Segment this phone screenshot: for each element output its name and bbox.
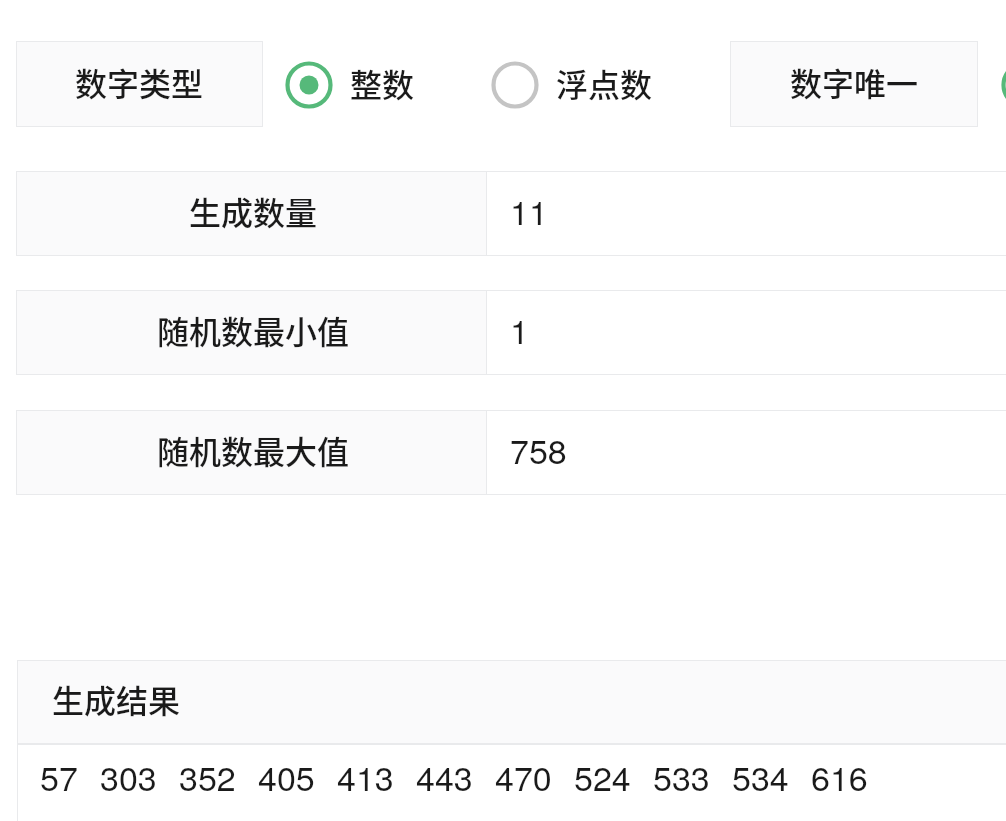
button[interactable]: 随机数最大值 xyxy=(16,410,487,495)
button[interactable]: 758 xyxy=(486,410,1006,495)
button[interactable]: 生成结果 xyxy=(17,660,1006,744)
staticText: 数字唯一 xyxy=(790,59,919,105)
button[interactable]: 浮点数 xyxy=(488,58,542,112)
staticText: 数字类型 xyxy=(75,59,204,105)
staticText: 352 xyxy=(179,752,236,801)
button[interactable]: 11 xyxy=(486,171,1006,256)
staticText: 470 xyxy=(495,752,552,801)
staticText: 1 xyxy=(510,305,529,354)
staticText: 随机数最小值 xyxy=(157,307,350,353)
staticText: 随机数最大值 xyxy=(157,427,350,473)
staticText: 443 xyxy=(416,752,473,801)
staticText: 534 xyxy=(732,752,789,801)
staticText: 524 xyxy=(574,752,631,801)
staticText: 生成结果 xyxy=(52,676,181,722)
button[interactable]: 1 xyxy=(486,290,1006,375)
staticText: 405 xyxy=(258,752,315,801)
button[interactable]: 生成数量 xyxy=(16,171,487,256)
button[interactable]: 数字唯一 xyxy=(730,41,978,127)
staticText: 758 xyxy=(510,425,567,474)
staticText: 浮点数 xyxy=(556,60,653,106)
staticText: 303 xyxy=(100,752,157,801)
staticText: 533 xyxy=(653,752,710,801)
button[interactable]: 是 xyxy=(998,58,1006,112)
button[interactable]: 随机数最小值 xyxy=(16,290,487,375)
staticText: 整数 xyxy=(350,60,415,106)
button[interactable]: 数字类型 xyxy=(16,41,263,127)
staticText: 616 xyxy=(811,752,868,801)
staticText: 11 xyxy=(510,186,548,235)
staticText: 413 xyxy=(337,752,394,801)
staticText: 57 xyxy=(40,752,78,801)
staticText: 生成数量 xyxy=(189,188,318,234)
button[interactable]: 整数 xyxy=(282,58,336,112)
